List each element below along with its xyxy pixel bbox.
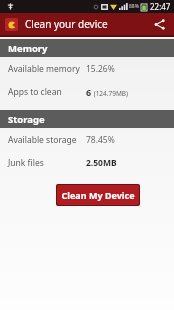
button[interactable]: Share: [149, 14, 169, 34]
button[interactable]: Available memory: [0, 57, 174, 80]
staticText: 78.45%: [86, 134, 115, 146]
staticText: Available storage: [8, 134, 77, 146]
staticText: Apps to clean: [8, 86, 62, 98]
staticText: Memory: [8, 42, 48, 55]
staticText: Storage: [8, 113, 45, 126]
staticText: (124.79MB): [92, 89, 129, 98]
staticText: 88%: [129, 3, 139, 10]
staticText: Clean your device: [25, 17, 108, 31]
staticText: 6: [86, 86, 92, 98]
staticText: Clean My Device: [61, 189, 135, 201]
button[interactable]: Clean My Device: [57, 185, 139, 205]
button[interactable]: Junk files: [0, 151, 174, 174]
staticText: 22:47: [150, 1, 171, 12]
staticText: Junk files: [8, 157, 44, 169]
staticText: 15.26%: [86, 63, 115, 75]
button[interactable]: Available storage: [0, 128, 174, 151]
staticText: Available memory: [8, 63, 80, 75]
staticText: 2.50MB: [86, 157, 117, 169]
button[interactable]: Apps to clean: [0, 80, 174, 103]
